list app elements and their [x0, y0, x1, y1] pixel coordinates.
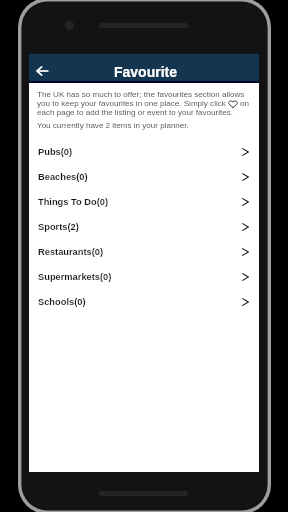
button[interactable]: Schools(0) [29, 289, 259, 314]
staticText: Things To Do(0) [38, 197, 109, 207]
button[interactable]: Beaches(0) [29, 164, 259, 189]
staticText: each page to add the listing or event to… [37, 108, 233, 117]
staticText: Sports(2) [38, 222, 79, 232]
staticText: Favourite [114, 64, 178, 80]
button[interactable]: Things To Do(0) [29, 189, 259, 214]
button[interactable]: Back [30, 59, 54, 83]
staticText: Supermarkets(0) [38, 272, 112, 282]
staticText: You currently have 2 items in your plann… [37, 121, 189, 130]
button[interactable]: Pubs(0) [29, 139, 259, 164]
staticText: Restaurants(0) [38, 247, 104, 257]
button[interactable]: Supermarkets(0) [29, 264, 259, 289]
button[interactable]: Sports(2) [29, 214, 259, 239]
staticText: The UK has so much to offer; the favouri… [37, 90, 245, 99]
staticText: Pubs(0) [38, 147, 73, 157]
staticText: Schools(0) [38, 297, 86, 307]
staticText: you to keep your favourites in one place… [37, 99, 226, 108]
staticText: on [240, 99, 249, 108]
staticText: Beaches(0) [38, 172, 88, 182]
button[interactable]: Restaurants(0) [29, 239, 259, 264]
